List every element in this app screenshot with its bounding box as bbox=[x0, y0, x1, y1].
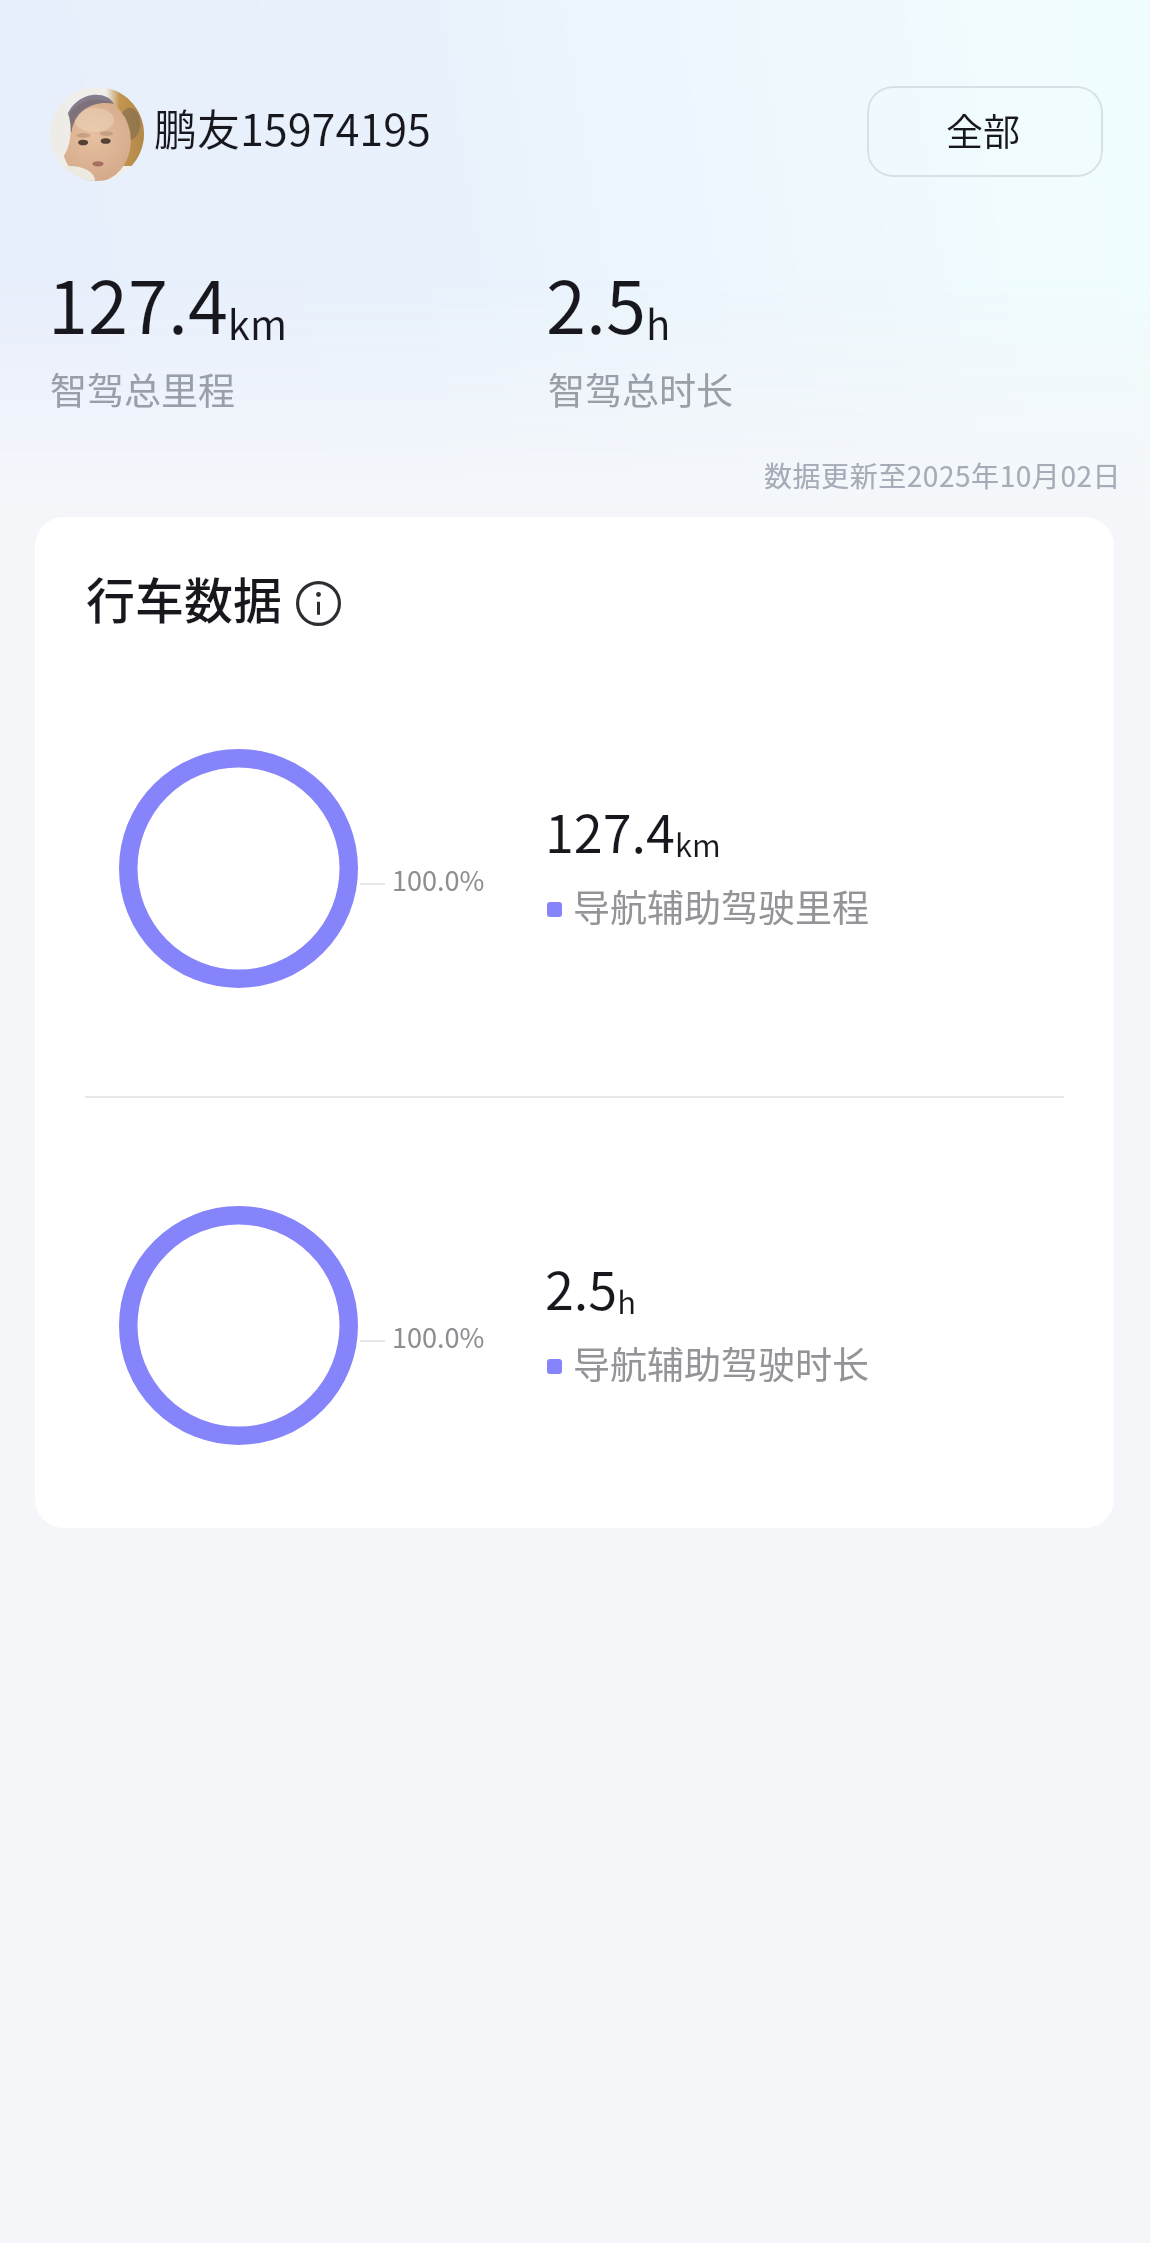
staticText: 行车数据 bbox=[86, 562, 283, 633]
staticText: 全部 bbox=[946, 103, 1020, 157]
staticText: 127.4km bbox=[48, 250, 287, 354]
staticText: 100.0% bbox=[392, 860, 485, 899]
staticText: 导航辅助驾驶里程 bbox=[573, 879, 869, 933]
staticText: 100.0% bbox=[392, 1317, 485, 1356]
staticText: 智驾总时长 bbox=[548, 362, 733, 416]
staticText: 智驾总里程 bbox=[50, 362, 235, 416]
staticText: 导航辅助驾驶时长 bbox=[573, 1336, 869, 1390]
staticText: 数据更新至2025年10月02日 bbox=[764, 455, 1122, 496]
button[interactable]: 行车数据说明 (Driving data info) bbox=[293, 578, 343, 628]
staticText: 2.5h bbox=[546, 250, 671, 354]
staticText: 127.4km bbox=[545, 793, 721, 868]
button[interactable]: 全部 bbox=[867, 86, 1103, 177]
staticText: 2.5h bbox=[545, 1250, 636, 1325]
staticText: 鹏友15974195 bbox=[154, 96, 431, 158]
button[interactable]: 用户头像 (Profile avatar) bbox=[50, 87, 144, 181]
